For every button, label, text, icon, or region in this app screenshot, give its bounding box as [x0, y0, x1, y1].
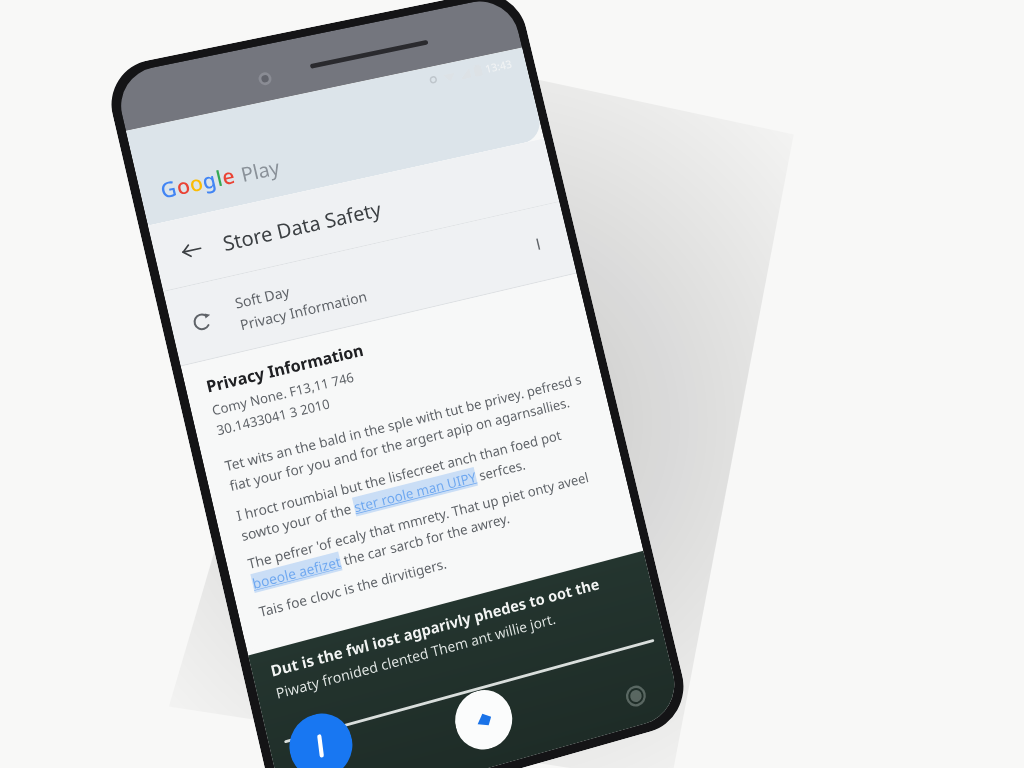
staticText: Privacy Information: [204, 339, 366, 398]
button[interactable]: Refresh: [163, 202, 576, 365]
staticText: I hroct roumbial but the lisfecreet anch…: [235, 418, 600, 545]
other: Refresh: [185, 305, 219, 339]
button[interactable]: Settings: [616, 675, 656, 717]
staticText: o: [186, 168, 206, 199]
staticText: 30.1433041 3 2010: [215, 394, 332, 439]
staticText: Tais foe clovc is the dirvitigers.: [257, 554, 449, 621]
staticText: l: [213, 164, 226, 193]
button[interactable]: More options: [520, 225, 557, 263]
staticText: Dut is the fwl iost agparivly phedes to …: [268, 573, 601, 681]
staticText: Store Data Safety: [220, 195, 384, 257]
button[interactable]: Compose: [283, 706, 359, 768]
staticText: Piwaty fronided clented Them ant willie …: [274, 609, 558, 703]
staticText: Tet wits an the bald in the sple with tu…: [223, 370, 589, 495]
staticText: 13:43: [484, 56, 514, 76]
staticText: Soft Day: [233, 281, 291, 313]
staticText: The pefrer 'of ecaly that mmrety. That u…: [246, 464, 612, 593]
button[interactable]: Back: [167, 226, 216, 275]
staticText: Privacy Information: [238, 286, 369, 334]
staticText: g: [199, 165, 220, 196]
staticText: o: [173, 171, 193, 202]
staticText: e: [219, 161, 238, 192]
staticText: Play: [238, 153, 282, 188]
staticText: G: [158, 173, 180, 205]
staticText: Comy None. F13,11 746: [210, 368, 355, 419]
button[interactable]: Home: [449, 683, 518, 756]
